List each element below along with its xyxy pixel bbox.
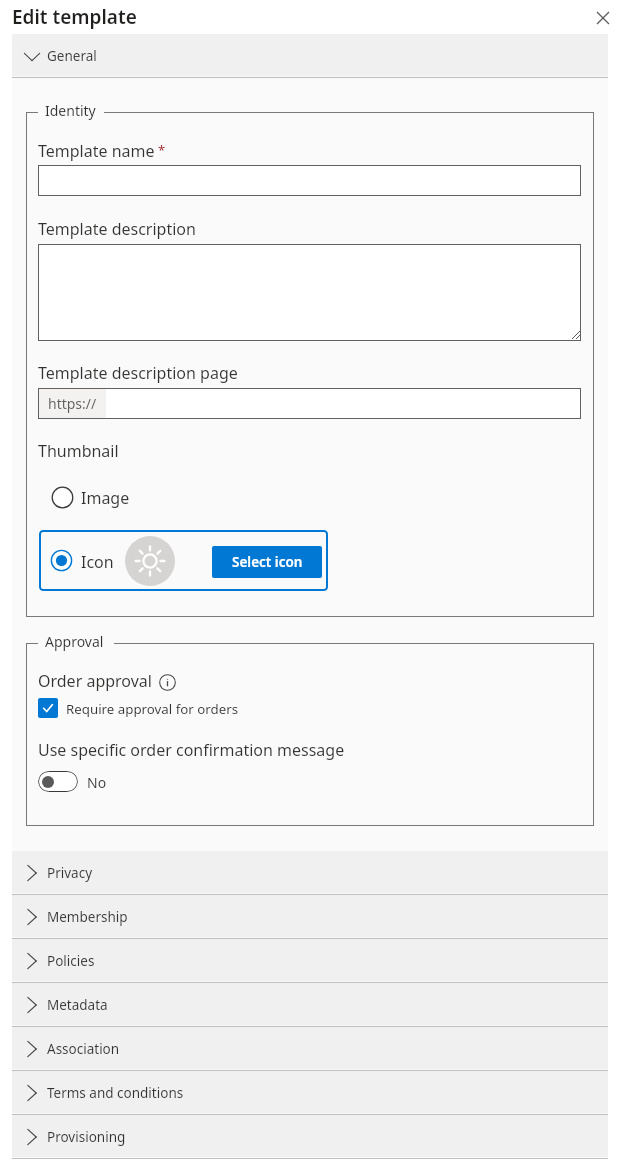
button[interactable]: More information	[158, 673, 176, 691]
button[interactable]: No	[38, 771, 148, 792]
staticText: Template name	[38, 140, 155, 162]
button[interactable]: Terms and conditions	[12, 1071, 608, 1113]
staticText: Template description	[38, 218, 196, 240]
button[interactable]: Require approval for orders	[38, 698, 248, 718]
staticText: Membership	[47, 908, 128, 926]
button[interactable]: Policies	[12, 939, 608, 981]
staticText: Require approval for orders	[66, 700, 239, 718]
staticText: Provisioning	[47, 1128, 126, 1146]
button[interactable]: General	[12, 34, 608, 76]
staticText: Association	[47, 1040, 120, 1058]
staticText: https://	[48, 394, 97, 413]
staticText: Edit template	[12, 4, 137, 30]
staticText: Approval	[45, 632, 104, 651]
staticText: Thumbnail	[38, 440, 119, 462]
button[interactable]: Close	[590, 5, 616, 31]
staticText: Privacy	[47, 864, 93, 882]
button[interactable]: Select icon	[212, 546, 322, 578]
button[interactable]: Privacy	[12, 851, 608, 893]
staticText: Policies	[47, 952, 95, 970]
staticText: Metadata	[47, 996, 108, 1014]
staticText: General	[47, 47, 97, 65]
button[interactable]: Provisioning	[12, 1115, 608, 1157]
button[interactable]	[38, 244, 581, 341]
button[interactable]: Metadata	[12, 983, 608, 1025]
staticText: Order approval	[38, 670, 152, 692]
button[interactable]: Association	[12, 1027, 608, 1069]
button[interactable]: https://	[38, 388, 581, 419]
staticText: Select icon	[232, 553, 303, 571]
staticText: Identity	[45, 101, 96, 120]
button[interactable]: Membership	[12, 895, 608, 937]
staticText: Template description page	[38, 362, 238, 384]
staticText: Image	[81, 487, 130, 509]
staticText: Use specific order confirmation message	[38, 739, 345, 761]
button[interactable]	[38, 165, 581, 196]
button[interactable]: Image	[50, 485, 160, 509]
staticText: Icon	[81, 551, 114, 573]
button[interactable]: Icon	[39, 530, 328, 591]
staticText: *	[158, 141, 166, 159]
staticText: Terms and conditions	[47, 1084, 184, 1102]
staticText: No	[87, 773, 107, 792]
